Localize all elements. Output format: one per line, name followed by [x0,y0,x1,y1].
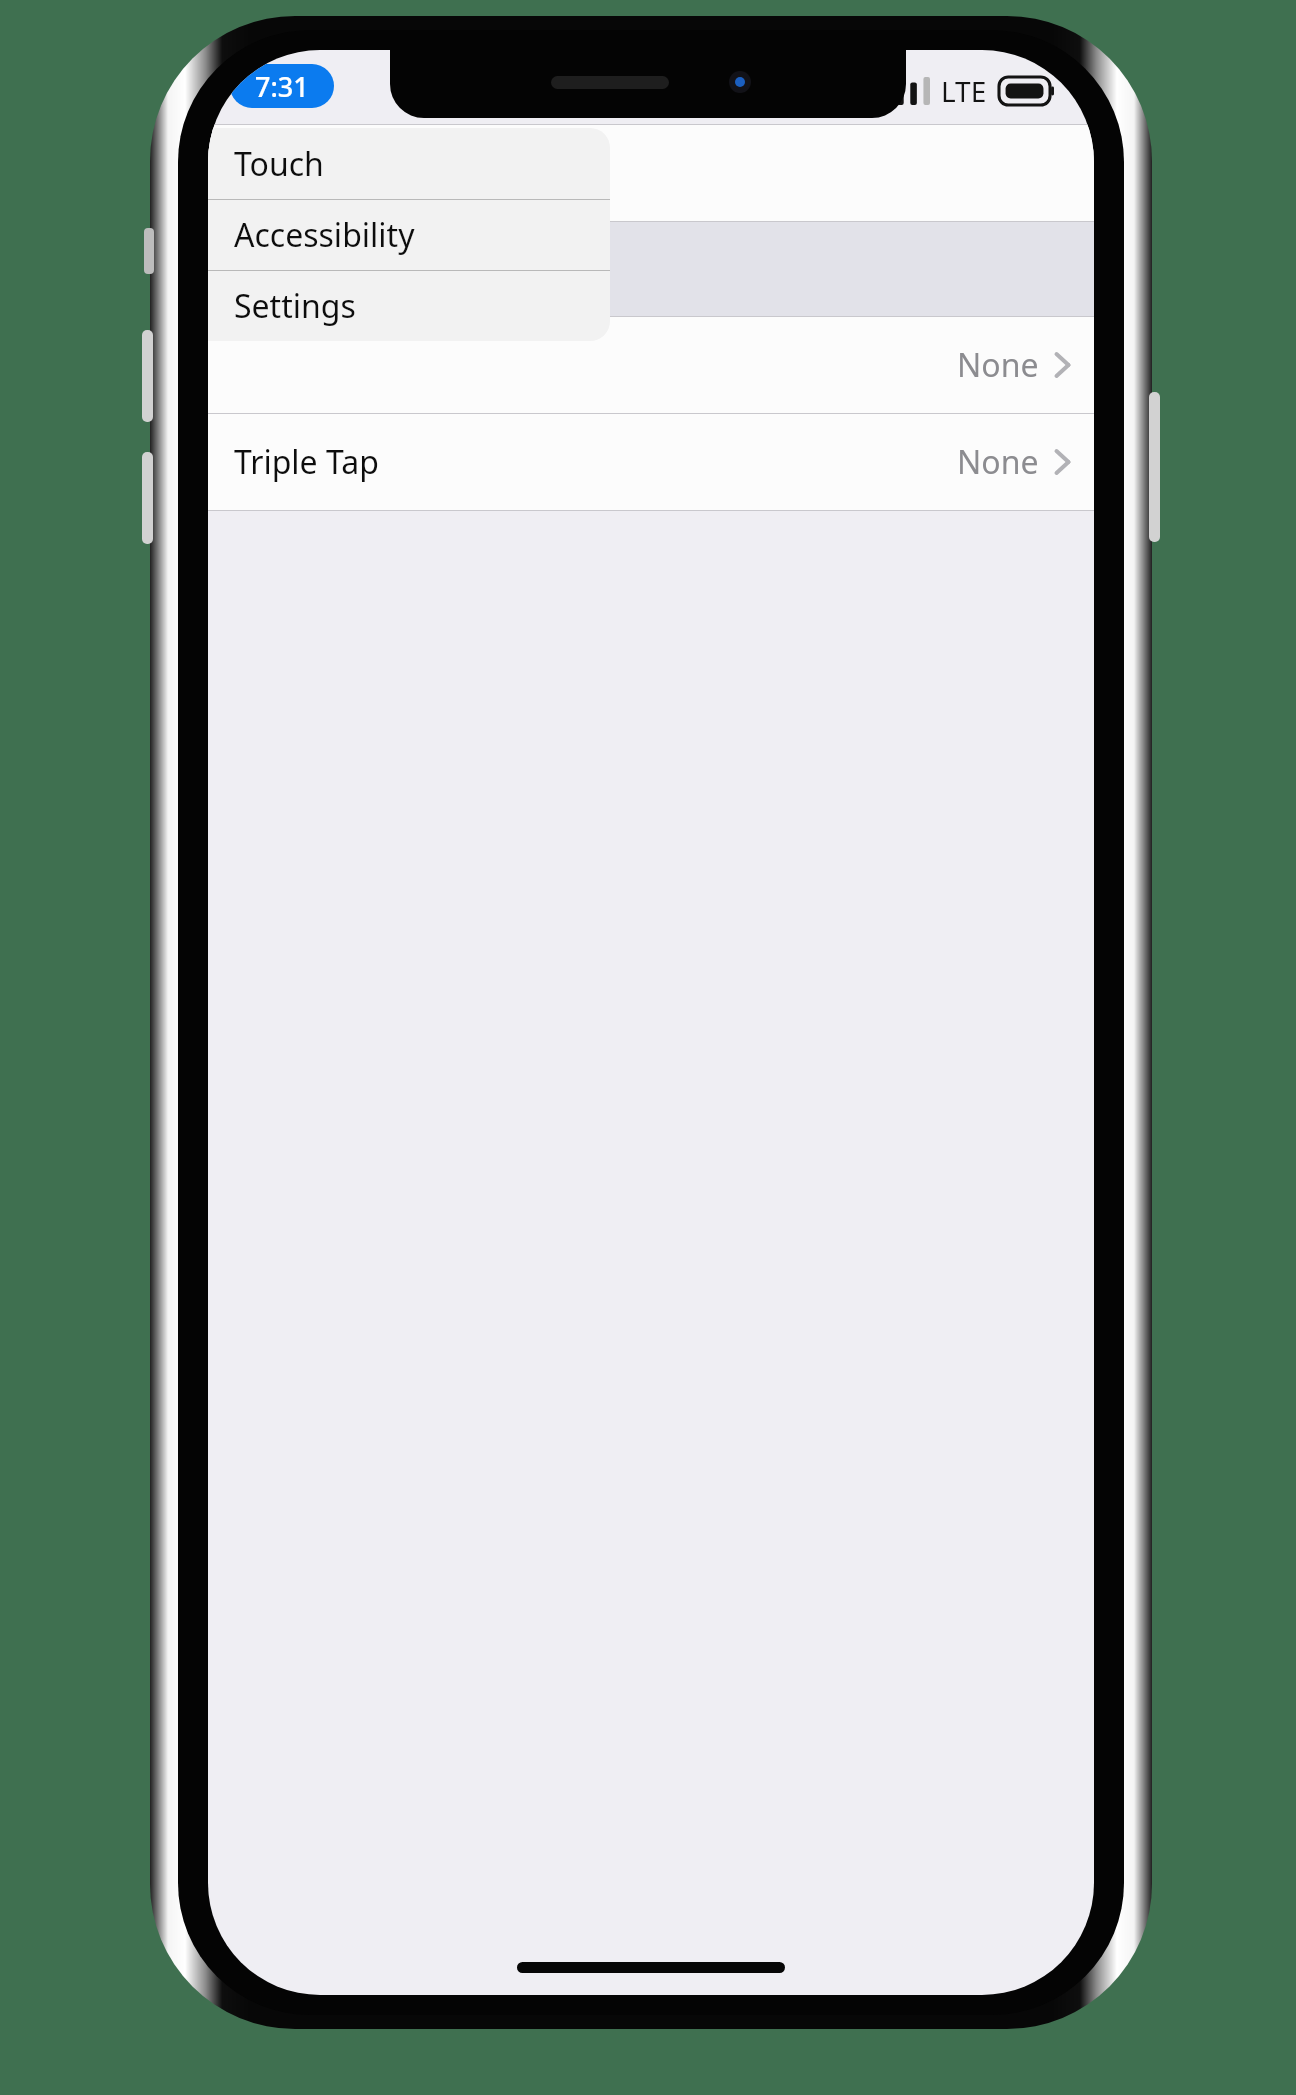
staticText: None [957,343,1039,387]
button[interactable]: Touch [208,128,610,199]
staticText: None [957,440,1039,484]
staticText: Triple Tap [234,440,379,484]
button[interactable]: Accessibility [208,200,610,270]
staticText: Accessibility [234,213,415,257]
other: Home indicator [517,1962,785,1973]
staticText: LTE [941,72,987,110]
other: Location in use, 7:31 [230,64,334,108]
staticText: Touch [234,142,324,186]
button[interactable]: Settings [208,271,610,341]
staticText: Settings [234,284,356,328]
button[interactable]: None [208,317,1094,413]
staticText: 7:31 [255,68,309,105]
button[interactable]: Triple Tap [208,414,1094,510]
button[interactable] [208,222,1094,316]
button[interactable] [208,125,1094,221]
